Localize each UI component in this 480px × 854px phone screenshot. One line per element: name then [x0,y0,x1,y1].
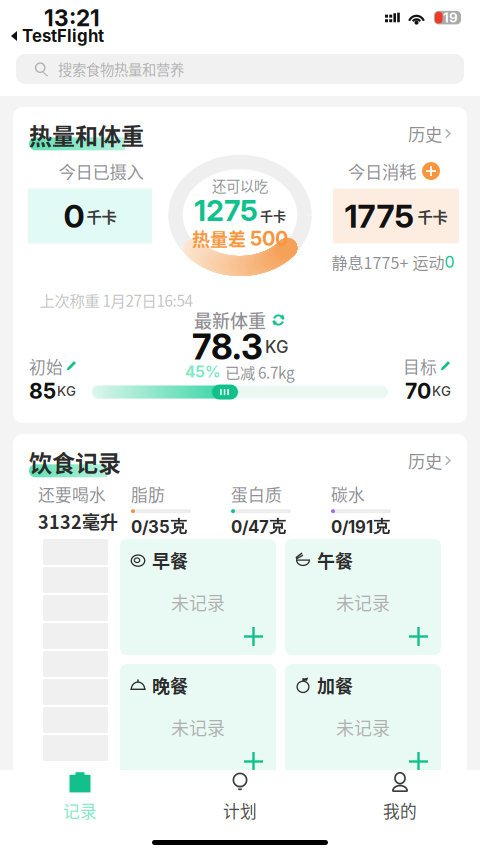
staticText: TestFlight [22,26,104,46]
staticText: 饮食记录 [29,445,121,478]
button[interactable]: 我的 [320,770,480,824]
button[interactable]: 历史 [13,434,467,473]
button[interactable]: 计划 [160,770,320,824]
staticText: 19 [443,10,458,26]
button[interactable]: 午餐 [285,539,441,655]
button[interactable]: 记录 [0,770,160,824]
staticText: 0 [63,197,84,235]
staticText: 未记录 [336,589,390,615]
staticText: 午餐 [317,547,353,573]
staticText: 上次称重 1月27日16:54 [39,289,192,311]
staticText: 加餐 [317,672,353,698]
staticText: 45% [185,363,221,381]
staticText: 搜索食物热量和营养 [58,59,184,79]
staticText: 还要喝水 [38,482,106,506]
staticText: 早餐 [152,547,188,573]
staticText: 未记录 [171,714,225,740]
button[interactable]: 晚餐 [120,664,276,780]
staticText: 历史 [408,121,442,146]
staticText: 0 [444,252,454,272]
staticText: 1775 [344,197,414,235]
button[interactable]: 早餐 [120,539,276,655]
staticText: 85 [29,378,56,404]
staticText: KG [57,383,76,399]
staticText: 碳水 [331,482,365,506]
staticText: 晚餐 [152,672,188,698]
staticText: KG [432,383,451,399]
staticText: 今日消耗 [348,158,416,183]
staticText: 静息1775+ 运动 [331,250,444,274]
staticText: 千卡 [260,206,286,225]
button[interactable]: 加餐 [285,664,441,780]
staticText: 记录 [63,798,97,823]
staticText: 计划 [223,798,257,823]
staticText: 1275 [194,193,258,228]
staticText: 3132毫升 [38,508,118,534]
staticText: 0/35克 [131,516,187,537]
staticText: 历史 [408,448,442,473]
staticText: 78.3 [192,326,263,368]
staticText: 千卡 [86,205,116,227]
staticText: 目标 [403,354,437,378]
staticText: 500 [250,226,288,251]
staticText: 今日已摄入 [58,158,143,183]
staticText: 已减 6.7kg [225,361,295,383]
staticText: 脂肪 [131,482,165,506]
staticText: 未记录 [171,589,225,615]
staticText: KG [265,337,288,357]
staticText: 0/47克 [231,516,286,537]
staticText: 蛋白质 [231,482,282,506]
staticText: 初始 [29,354,63,378]
staticText: 0/191克 [331,516,390,537]
staticText: 热量差 [192,225,246,252]
staticText: 最新体重 [194,307,266,333]
staticText: 未记录 [336,714,390,740]
staticText: 我的 [383,798,417,823]
staticText: 13:21 [44,4,100,32]
button[interactable]: 历史 [13,107,467,146]
staticText: 还可以吃 [212,175,268,196]
staticText: 热量和体重 [29,118,144,151]
staticText: 千卡 [417,205,447,227]
staticText: 70 [405,378,431,404]
